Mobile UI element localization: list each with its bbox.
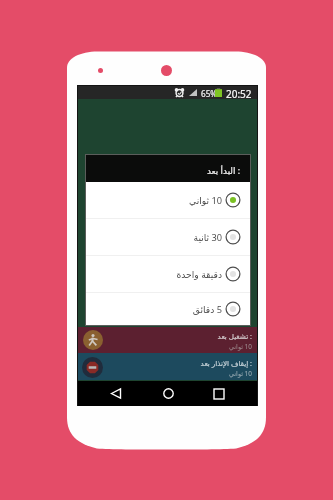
staticText: 10 ثواني bbox=[229, 342, 252, 351]
button[interactable]: 30 ثانية bbox=[86, 219, 250, 255]
staticText: إيقاف الإنذار بعد : bbox=[200, 358, 252, 368]
staticText: 10 ثواني bbox=[189, 194, 222, 207]
staticText: 30 ثانية bbox=[193, 231, 222, 244]
button[interactable]: 10 ثواني bbox=[86, 182, 250, 218]
staticText: 20:52 bbox=[226, 87, 252, 100]
button[interactable]: 5 دقائق bbox=[86, 293, 250, 325]
staticText: 5 دقائق bbox=[192, 303, 222, 316]
button[interactable]: Back bbox=[103, 381, 129, 406]
button[interactable]: دقيقة واحدة bbox=[86, 256, 250, 292]
button[interactable]: Home bbox=[155, 381, 181, 406]
staticText: البدأ بعد : bbox=[207, 165, 241, 177]
staticText: 10 ثواني bbox=[229, 369, 252, 378]
staticText: دقيقة واحدة bbox=[176, 268, 222, 281]
button[interactable]: تشغيل بعد : bbox=[78, 327, 257, 353]
button[interactable]: Recent apps bbox=[206, 381, 232, 406]
button[interactable]: إيقاف الإنذار بعد : bbox=[78, 353, 257, 380]
staticText: تشغيل بعد : bbox=[217, 331, 252, 341]
staticText: 65% bbox=[201, 88, 218, 99]
